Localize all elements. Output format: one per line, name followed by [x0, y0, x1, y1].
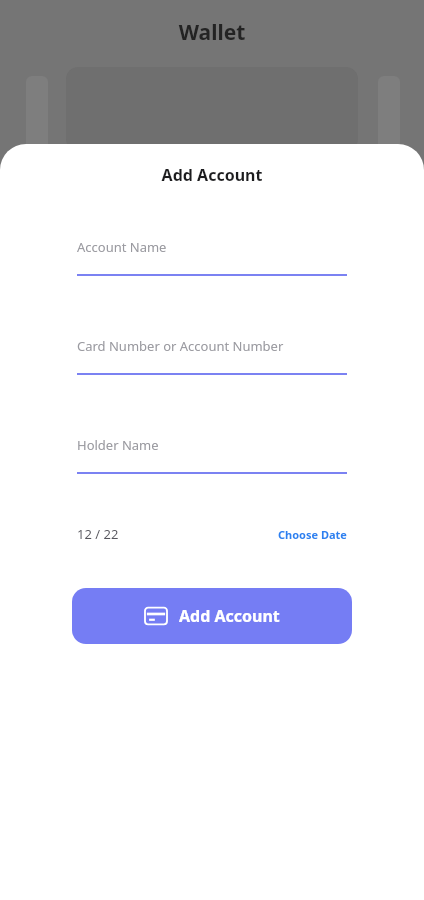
other: Card — [145, 605, 167, 627]
staticText: Holder Name — [77, 436, 159, 454]
button[interactable]: Choose Date — [278, 527, 347, 542]
staticText: Add Account — [179, 605, 280, 627]
staticText: Add Account — [0, 164, 424, 186]
staticText: Account Name — [77, 238, 167, 256]
button[interactable]: Account Name — [77, 234, 347, 276]
staticText: Wallet — [0, 18, 424, 47]
button[interactable]: Card — [72, 588, 352, 644]
button[interactable]: Holder Name — [77, 432, 347, 474]
staticText: Card Number or Account Number — [77, 337, 284, 355]
staticText: 12 / 22 — [77, 525, 119, 543]
staticText: Choose Date — [278, 527, 347, 542]
button[interactable]: Card Number or Account Number — [77, 333, 347, 375]
